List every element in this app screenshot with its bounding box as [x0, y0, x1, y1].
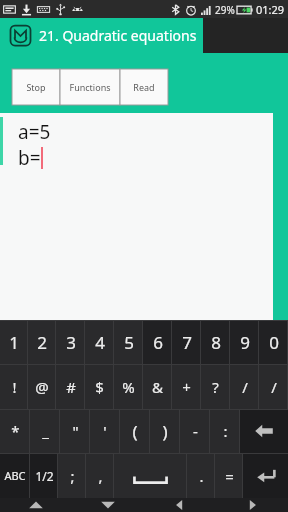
staticText: / — [242, 377, 248, 397]
staticText: ; — [70, 466, 75, 486]
button[interactable]: Right — [216, 498, 288, 512]
button[interactable]: - — [180, 409, 210, 453]
staticText: b= — [18, 145, 41, 171]
staticText: ABC — [4, 468, 26, 483]
button[interactable]: % — [114, 364, 143, 409]
staticText: 9 — [240, 331, 250, 354]
button[interactable]: 0 — [259, 320, 288, 364]
button[interactable]: ? — [201, 364, 230, 409]
button[interactable]: & — [143, 364, 172, 409]
staticText: 2 — [37, 331, 47, 354]
staticText: % — [122, 377, 135, 397]
button[interactable]: , — [86, 453, 114, 498]
staticText: . — [199, 466, 204, 486]
button[interactable]: Functions — [60, 69, 120, 105]
staticText: - — [193, 421, 198, 441]
button[interactable]: 2 — [28, 320, 56, 364]
button[interactable]: . — [187, 453, 215, 498]
staticText: 3 — [66, 331, 76, 354]
staticText: _ — [42, 421, 49, 441]
button[interactable]: 7 — [172, 320, 201, 364]
staticText: 5 — [124, 331, 134, 354]
button[interactable]: : — [210, 409, 240, 453]
staticText: Functions — [69, 81, 111, 93]
staticText: 0 — [269, 331, 279, 354]
button[interactable]: / — [259, 364, 288, 409]
staticText: + — [182, 377, 191, 397]
staticText: ! — [12, 377, 17, 397]
button[interactable]: Space — [114, 453, 187, 498]
button[interactable]: App icon — [0, 18, 203, 53]
button[interactable]: 6 — [143, 320, 172, 364]
staticText: $ — [95, 377, 104, 397]
staticText: " — [72, 421, 79, 441]
button[interactable]: 1/2 — [30, 453, 58, 498]
staticText: ( — [132, 420, 138, 443]
button[interactable]: 9 — [230, 320, 259, 364]
button[interactable]: 3 — [56, 320, 85, 364]
staticText: Stop — [26, 81, 46, 93]
staticText: * — [11, 421, 20, 441]
button[interactable]: 8 — [201, 320, 230, 364]
button[interactable]: _ — [30, 409, 60, 453]
button[interactable]: 5 — [114, 320, 143, 364]
button[interactable]: Up — [0, 498, 72, 512]
staticText: 8 — [211, 331, 221, 354]
button[interactable]: $ — [85, 364, 114, 409]
staticText: a=5 — [18, 119, 51, 145]
button[interactable]: a=5 — [0, 113, 273, 320]
other: App icon — [8, 23, 33, 48]
staticText: 7 — [182, 331, 192, 354]
button[interactable]: ' — [90, 409, 120, 453]
staticText: / — [271, 377, 277, 397]
staticText: ) — [162, 420, 168, 443]
button[interactable]: Backspace — [240, 409, 288, 453]
staticText: Read — [133, 81, 155, 93]
staticText: : — [223, 421, 228, 441]
staticText: ' — [103, 421, 107, 441]
staticText: 01:29 — [256, 2, 285, 17]
button[interactable]: Left — [144, 498, 216, 512]
button[interactable]: * — [0, 409, 30, 453]
staticText: 6 — [153, 331, 163, 354]
button[interactable]: 1 — [0, 320, 28, 364]
staticText: & — [152, 377, 163, 397]
staticText: 1 — [9, 331, 19, 354]
button[interactable]: ; — [58, 453, 86, 498]
button[interactable]: ! — [0, 364, 28, 409]
staticText: ? — [212, 377, 219, 397]
staticText: 1/2 — [35, 468, 54, 484]
staticText: # — [66, 377, 76, 397]
button[interactable]: + — [172, 364, 201, 409]
button[interactable]: ABC — [0, 453, 30, 498]
button[interactable]: # — [56, 364, 85, 409]
staticText: 4 — [95, 331, 105, 354]
button[interactable]: 4 — [85, 320, 114, 364]
staticText: @ — [35, 377, 49, 397]
button[interactable]: " — [60, 409, 90, 453]
button[interactable]: Stop — [12, 69, 60, 105]
button[interactable]: Enter — [243, 453, 288, 498]
staticText: , — [98, 466, 103, 486]
button[interactable]: / — [230, 364, 259, 409]
staticText: 29% — [215, 3, 235, 17]
staticText: = — [225, 466, 234, 486]
button[interactable]: = — [215, 453, 243, 498]
button[interactable]: ) — [150, 409, 180, 453]
button[interactable]: @ — [28, 364, 56, 409]
button[interactable]: Down — [72, 498, 144, 512]
button[interactable]: Read — [120, 69, 168, 105]
button[interactable]: ( — [120, 409, 150, 453]
staticText: 21. Quadratic equations — [39, 26, 197, 45]
